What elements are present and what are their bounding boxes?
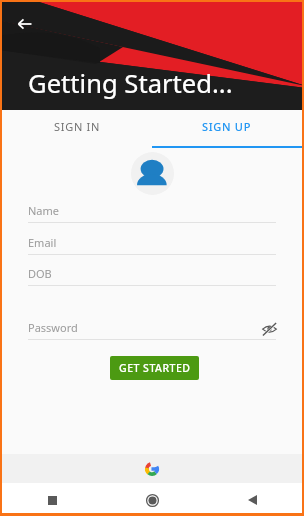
staticText: Getting Started... [28, 66, 233, 101]
button[interactable]: SIGN UP [152, 110, 302, 148]
button[interactable]: Home [102, 483, 202, 513]
button[interactable]: SIGN IN [2, 110, 152, 148]
staticText: Name [28, 203, 60, 218]
staticText: SIGN IN [54, 119, 100, 134]
button[interactable]: Back [202, 483, 302, 513]
button[interactable]: Email [2, 233, 302, 255]
button[interactable]: DOB [2, 264, 302, 286]
staticText: Email [28, 235, 57, 250]
button[interactable]: Sign in with Google [2, 454, 302, 483]
button[interactable]: Name [2, 201, 302, 223]
staticText: GET STARTED [119, 361, 191, 375]
staticText: DOB [28, 266, 52, 281]
button[interactable]: Show password [260, 319, 278, 337]
staticText: Password [28, 320, 78, 335]
staticText: SIGN UP [202, 119, 252, 134]
button[interactable]: Back [11, 10, 39, 38]
button[interactable]: Password [2, 318, 302, 340]
button[interactable]: GET STARTED [110, 356, 199, 380]
button[interactable]: Recent apps [2, 483, 102, 513]
